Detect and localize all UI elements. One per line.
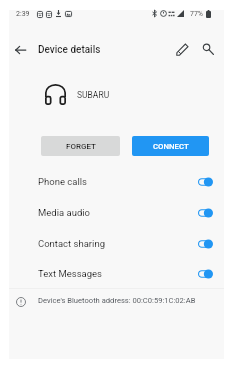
staticText: 2:39 [16, 10, 30, 18]
staticText: FORGET [66, 142, 96, 151]
staticText: SUBARU [77, 90, 110, 100]
staticText: CONNECT [153, 142, 189, 151]
button[interactable]: Rename [170, 37, 194, 61]
button[interactable]: Text Messages [9, 258, 224, 289]
button[interactable]: FORGET [41, 136, 120, 156]
button[interactable]: Contact sharing [9, 228, 224, 259]
staticText: Device details [38, 44, 101, 56]
staticText: Contact sharing [38, 238, 105, 249]
button[interactable]: CONNECT [132, 136, 209, 156]
staticText: 77% [190, 10, 203, 18]
button[interactable]: Phone calls [9, 166, 224, 197]
staticText: Phone calls [38, 176, 87, 187]
staticText: Device's Bluetooth address: 00:C0:59:1C:… [38, 296, 196, 305]
staticText: Text Messages [38, 268, 103, 279]
button[interactable]: Search [196, 37, 220, 61]
staticText: Media audio [38, 207, 91, 218]
button[interactable]: Media audio [9, 197, 224, 228]
button[interactable]: Back [8, 38, 32, 62]
